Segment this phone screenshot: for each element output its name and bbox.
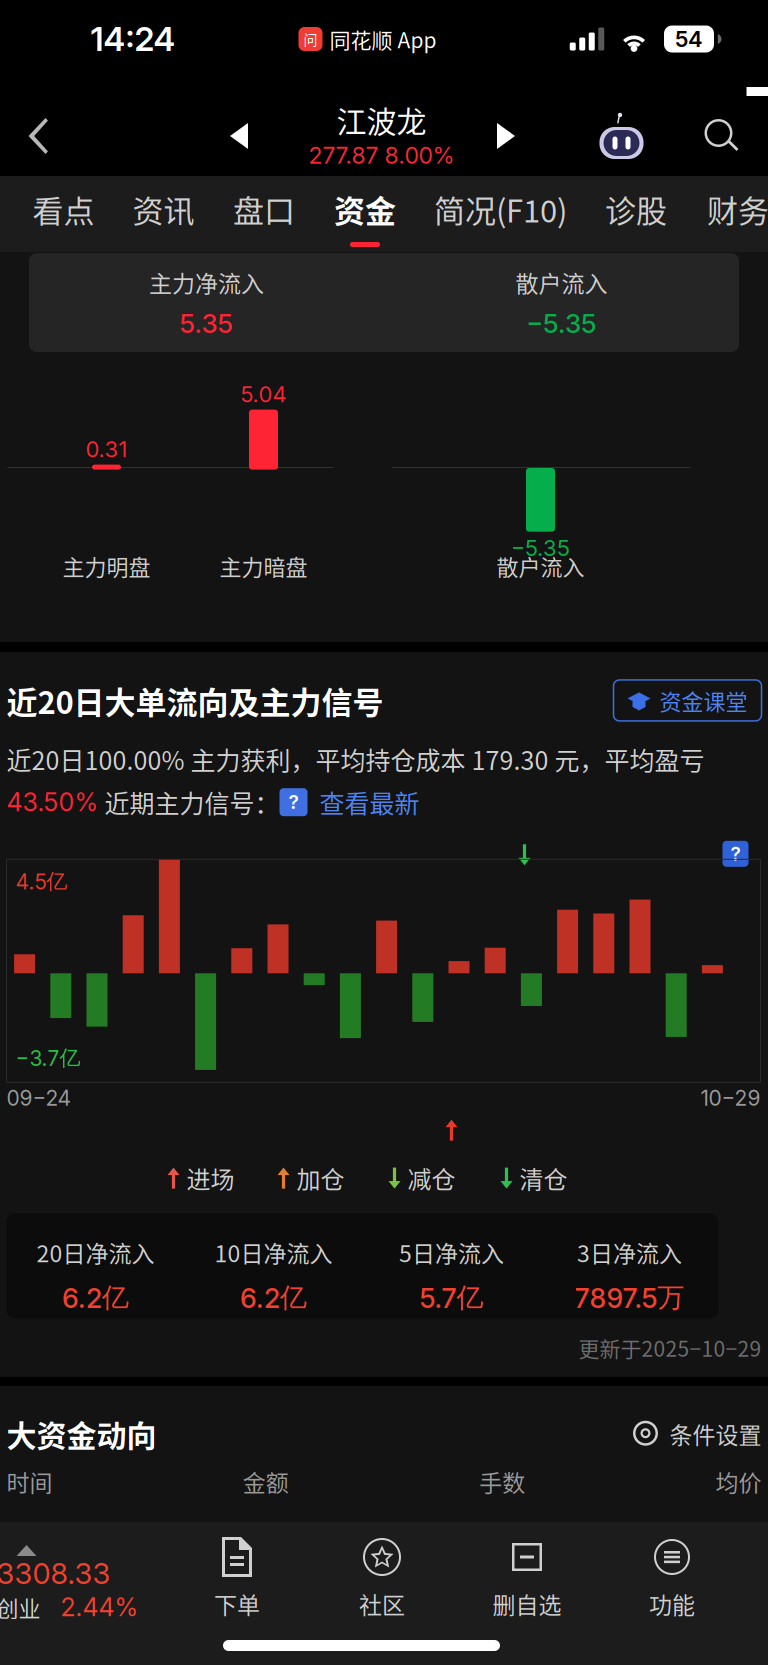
- staticText: 5.7亿: [419, 1281, 483, 1315]
- staticText: 功能: [649, 1587, 695, 1620]
- staticText: 2.44%: [60, 1592, 138, 1622]
- staticText: 散户流入: [515, 266, 607, 299]
- staticText: 散户流入: [496, 550, 584, 582]
- staticText: 5日净流入: [399, 1235, 504, 1269]
- staticText: 同花顺 App: [329, 24, 436, 54]
- staticText: 14:24: [90, 19, 175, 59]
- staticText: 09−24: [6, 1085, 71, 1111]
- staticText: 诊股: [605, 187, 667, 231]
- staticText: 进场: [186, 1161, 234, 1195]
- staticText: 277.87 8.00%: [308, 141, 454, 169]
- staticText: 主力明盘: [62, 550, 150, 582]
- button[interactable]: 资金课堂: [613, 680, 761, 721]
- staticText: 江波龙: [336, 98, 426, 141]
- staticText: 3日净流入: [577, 1235, 682, 1269]
- staticText: 加仓: [296, 1161, 344, 1195]
- button[interactable]: 返回: [0, 96, 77, 176]
- staticText: 20日净流入: [36, 1235, 154, 1269]
- staticText: 10−29: [700, 1085, 760, 1111]
- staticText: 0.31: [85, 436, 127, 463]
- button[interactable]: 搜索: [683, 96, 768, 176]
- staticText: 近20日大单流向及主力信号: [6, 678, 383, 723]
- staticText: 10日净流入: [214, 1235, 332, 1269]
- staticText: −5.35: [526, 308, 597, 339]
- staticText: 查看最新: [307, 784, 419, 820]
- staticText: 5.35: [179, 308, 233, 339]
- button[interactable]: AI 助手: [590, 96, 652, 176]
- staticText: 简况(F10): [434, 187, 567, 231]
- staticText: 删自选: [492, 1587, 561, 1620]
- staticText: 均价: [715, 1465, 761, 1498]
- staticText: 更新于2025−10−29: [578, 1332, 761, 1363]
- staticText: 3308.33: [0, 1556, 110, 1591]
- staticText: 手数: [479, 1465, 525, 1498]
- staticText: 看点: [32, 187, 94, 231]
- staticText: 近期主力信号：: [98, 784, 279, 820]
- staticText: −5.35: [511, 535, 570, 561]
- staticText: 资金: [334, 187, 396, 231]
- button[interactable]: 创业板指数 3308.33: [0, 1537, 164, 1623]
- staticText: 盘口: [233, 187, 295, 231]
- staticText: 主力暗盘: [219, 550, 307, 582]
- staticText: 5.04: [240, 381, 286, 408]
- staticText: 金额: [243, 1465, 289, 1498]
- button[interactable]: 删自选: [454, 1522, 599, 1638]
- staticText: 清仓: [519, 1161, 567, 1195]
- staticText: 下单: [214, 1587, 260, 1620]
- staticText: 43.50%: [6, 787, 98, 817]
- button[interactable]: 财务: [686, 176, 768, 252]
- staticText: 主力净流入: [149, 266, 264, 299]
- staticText: 创业: [0, 1591, 40, 1623]
- staticText: 条件设置: [669, 1417, 761, 1450]
- staticText: 6.2亿: [240, 1281, 307, 1315]
- staticText: 资讯: [132, 187, 194, 231]
- button[interactable]: 资金: [314, 176, 415, 252]
- staticText: 54: [675, 26, 703, 52]
- button[interactable]: 下一只: [478, 96, 532, 176]
- button[interactable]: 简况(F10): [415, 176, 585, 252]
- button[interactable]: 盘口: [213, 176, 314, 252]
- button[interactable]: 看点: [13, 176, 113, 252]
- staticText: 资金课堂: [659, 684, 747, 716]
- staticText: 时间: [6, 1465, 52, 1498]
- button[interactable]: 条件设置: [631, 1417, 761, 1450]
- staticText: 近20日100.00% 主力获利，平均持仓成本 179.30 元，平均盈亏: [6, 741, 704, 777]
- button[interactable]: 社区: [309, 1522, 454, 1638]
- button[interactable]: 上一只: [212, 96, 266, 176]
- staticText: 社区: [359, 1587, 405, 1620]
- staticText: 大资金动向: [6, 1412, 156, 1455]
- staticText: 6.2亿: [62, 1281, 129, 1315]
- staticText: 问: [303, 29, 317, 49]
- staticText: −3.7亿: [15, 1045, 80, 1071]
- staticText: 4.5亿: [15, 868, 67, 895]
- button[interactable]: 下单: [164, 1522, 309, 1638]
- staticText: 财务: [707, 187, 768, 231]
- staticText: 减仓: [407, 1161, 455, 1195]
- staticText: 7897.5万: [574, 1281, 684, 1315]
- button[interactable]: 功能: [599, 1522, 744, 1638]
- button[interactable]: 诊股: [585, 176, 686, 252]
- staticText: ?: [288, 791, 298, 814]
- button[interactable]: 资讯: [113, 176, 213, 252]
- staticText: ?: [730, 842, 740, 865]
